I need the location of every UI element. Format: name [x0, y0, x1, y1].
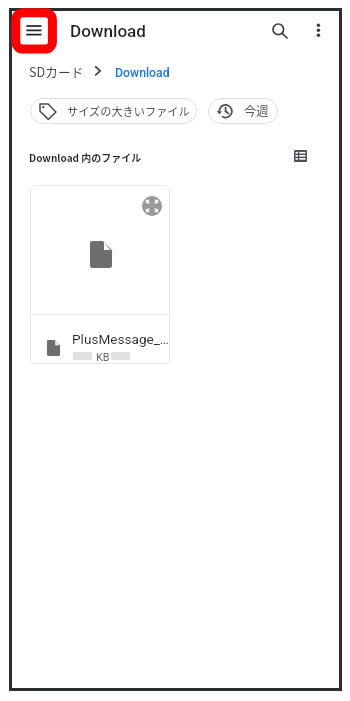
staticText: 今週 [244, 102, 269, 120]
button[interactable]: サイズの大きいファイル [30, 98, 197, 124]
button[interactable]: More options [307, 19, 330, 42]
staticText: KB [96, 351, 110, 364]
staticText: PlusMessage_… [72, 331, 169, 347]
button[interactable]: Menu [22, 19, 46, 43]
button[interactable]: Search [269, 20, 291, 42]
staticText: Download 内のファイル [29, 150, 142, 164]
button[interactable]: Switch view [291, 148, 309, 164]
button[interactable]: Download [115, 66, 170, 80]
button[interactable]: Expand [142, 196, 162, 216]
button[interactable]: 今週 [208, 98, 278, 124]
button[interactable]: SDカード [29, 62, 84, 80]
button[interactable]: Expand [30, 185, 170, 364]
staticText: サイズの大きいファイル [67, 103, 190, 119]
staticText: Download [70, 21, 146, 41]
